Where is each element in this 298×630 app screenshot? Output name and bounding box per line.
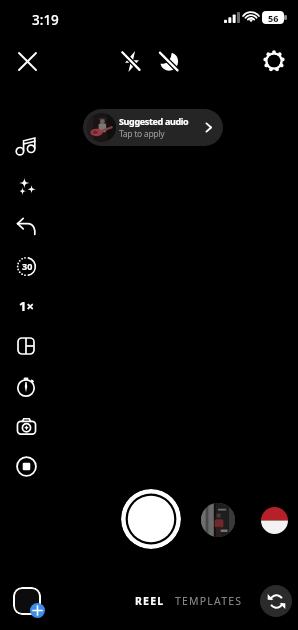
- staticText: REEL: [135, 594, 165, 608]
- button[interactable]: Settings: [260, 47, 288, 75]
- button[interactable]: Audio: [6, 126, 46, 166]
- staticText: 30: [22, 260, 33, 272]
- button[interactable]: Switch camera: [260, 585, 292, 617]
- staticText: Suggested audio: [119, 115, 189, 127]
- button[interactable]: Effects: [6, 166, 46, 206]
- button[interactable]: Video length 30 seconds: [6, 246, 46, 286]
- button[interactable]: Align: [6, 446, 46, 486]
- button[interactable]: Last capture: [201, 503, 235, 537]
- button[interactable]: Suggested audio: [83, 109, 223, 146]
- button[interactable]: REEL: [130, 590, 170, 612]
- staticText: TEMPLATES: [175, 594, 243, 608]
- button[interactable]: Night mode off: [154, 47, 182, 75]
- button[interactable]: Language: [261, 507, 288, 534]
- button[interactable]: Gallery: [6, 406, 46, 446]
- button[interactable]: Add from gallery: [11, 585, 45, 619]
- button[interactable]: Record: [121, 489, 181, 549]
- button[interactable]: Speed: [6, 286, 46, 326]
- button[interactable]: Undo: [6, 206, 46, 246]
- button[interactable]: Flash off: [116, 47, 144, 75]
- staticText: 3:19: [32, 11, 59, 29]
- button[interactable]: Layout: [6, 326, 46, 366]
- staticText: 1×: [19, 297, 34, 315]
- staticText: 56: [268, 12, 279, 24]
- button[interactable]: Close: [13, 47, 41, 75]
- button[interactable]: TEMPLATES: [170, 590, 248, 612]
- staticText: Tap to apply: [119, 128, 165, 140]
- button[interactable]: Timer: [6, 366, 46, 406]
